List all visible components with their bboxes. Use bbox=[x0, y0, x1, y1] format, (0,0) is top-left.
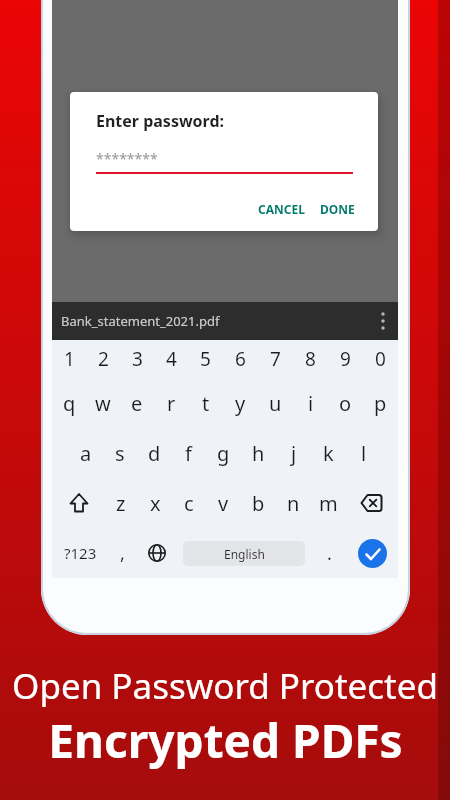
button[interactable]: 6 bbox=[223, 340, 258, 378]
button[interactable]: f bbox=[171, 428, 206, 478]
button[interactable]: 2 bbox=[86, 340, 120, 378]
button[interactable]: e bbox=[120, 378, 154, 428]
button[interactable] bbox=[52, 478, 104, 528]
button[interactable]: c bbox=[172, 478, 206, 528]
staticText: l bbox=[361, 440, 367, 467]
button[interactable]: t bbox=[188, 378, 223, 428]
staticText: z bbox=[116, 490, 126, 517]
staticText: w bbox=[95, 390, 111, 417]
staticText: i bbox=[308, 390, 314, 417]
staticText: y bbox=[235, 390, 246, 417]
staticText: 1 bbox=[64, 346, 75, 372]
button[interactable]: q bbox=[52, 378, 86, 428]
staticText: DONE bbox=[320, 201, 355, 217]
button[interactable]: d bbox=[137, 428, 171, 478]
button[interactable]: u bbox=[258, 378, 293, 428]
button[interactable]: 8 bbox=[293, 340, 328, 378]
staticText: 4 bbox=[166, 346, 177, 372]
button[interactable]: y bbox=[223, 378, 258, 428]
staticText: , bbox=[120, 541, 125, 566]
staticText: ?123 bbox=[64, 543, 97, 563]
staticText: h bbox=[252, 440, 265, 467]
staticText: x bbox=[150, 490, 161, 517]
button[interactable]: n bbox=[276, 478, 311, 528]
staticText: m bbox=[319, 490, 338, 517]
button[interactable]: b bbox=[241, 478, 276, 528]
button[interactable]: , bbox=[108, 528, 136, 578]
staticText: 6 bbox=[235, 346, 246, 372]
button[interactable]: l bbox=[346, 428, 381, 478]
staticText: 2 bbox=[98, 346, 109, 372]
staticText: Encrypted PDFs bbox=[48, 709, 403, 772]
button[interactable]: . bbox=[315, 528, 343, 578]
button[interactable]: a bbox=[69, 428, 103, 478]
button[interactable]: English bbox=[183, 541, 305, 566]
button[interactable] bbox=[140, 528, 174, 578]
staticText: 3 bbox=[132, 346, 143, 372]
staticText: t bbox=[202, 390, 210, 417]
staticText: e bbox=[131, 390, 143, 417]
button[interactable]: r bbox=[154, 378, 188, 428]
staticText: Bank_statement_2021.pdf bbox=[61, 312, 220, 330]
staticText: u bbox=[269, 390, 282, 417]
staticText: ******** bbox=[96, 149, 158, 168]
button[interactable]: 0 bbox=[363, 340, 398, 378]
staticText: 5 bbox=[200, 346, 211, 372]
button[interactable]: 9 bbox=[328, 340, 363, 378]
button[interactable]: CANCEL bbox=[258, 201, 305, 217]
staticText: CANCEL bbox=[258, 201, 305, 217]
button[interactable]: o bbox=[328, 378, 363, 428]
staticText: g bbox=[217, 440, 230, 467]
staticText: j bbox=[291, 440, 297, 467]
button[interactable]: p bbox=[363, 378, 398, 428]
staticText: 8 bbox=[305, 346, 316, 372]
button[interactable]: 4 bbox=[154, 340, 188, 378]
staticText: Open Password Protected bbox=[12, 662, 438, 710]
button[interactable]: g bbox=[206, 428, 241, 478]
button[interactable]: 1 bbox=[52, 340, 86, 378]
button[interactable] bbox=[358, 539, 387, 568]
button[interactable]: z bbox=[104, 478, 138, 528]
staticText: English bbox=[224, 546, 265, 562]
button[interactable]: m bbox=[311, 478, 346, 528]
button[interactable]: v bbox=[206, 478, 241, 528]
button[interactable]: k bbox=[311, 428, 346, 478]
staticText: . bbox=[327, 541, 332, 566]
staticText: q bbox=[63, 390, 76, 417]
button[interactable]: ?123 bbox=[58, 528, 103, 578]
button[interactable]: s bbox=[103, 428, 137, 478]
button[interactable] bbox=[346, 478, 398, 528]
staticText: r bbox=[167, 390, 176, 417]
button[interactable]: h bbox=[241, 428, 276, 478]
button[interactable]: x bbox=[138, 478, 172, 528]
staticText: b bbox=[252, 490, 265, 517]
staticText: f bbox=[185, 440, 192, 467]
button[interactable]: i bbox=[293, 378, 328, 428]
staticText: d bbox=[148, 440, 161, 467]
staticText: s bbox=[115, 440, 125, 467]
button[interactable]: w bbox=[86, 378, 120, 428]
staticText: c bbox=[184, 490, 194, 517]
staticText: 9 bbox=[340, 346, 351, 372]
staticText: 7 bbox=[270, 346, 281, 372]
staticText: o bbox=[339, 390, 352, 417]
button[interactable]: DONE bbox=[320, 201, 355, 217]
staticText: n bbox=[287, 490, 300, 517]
button[interactable]: j bbox=[276, 428, 311, 478]
staticText: Enter password: bbox=[96, 110, 225, 132]
staticText: k bbox=[323, 440, 334, 467]
staticText: v bbox=[218, 490, 229, 517]
staticText: p bbox=[374, 390, 387, 417]
button[interactable]: 7 bbox=[258, 340, 293, 378]
staticText: 0 bbox=[375, 346, 386, 372]
button[interactable]: 3 bbox=[120, 340, 154, 378]
button[interactable]: 5 bbox=[188, 340, 223, 378]
staticText: a bbox=[80, 440, 92, 467]
